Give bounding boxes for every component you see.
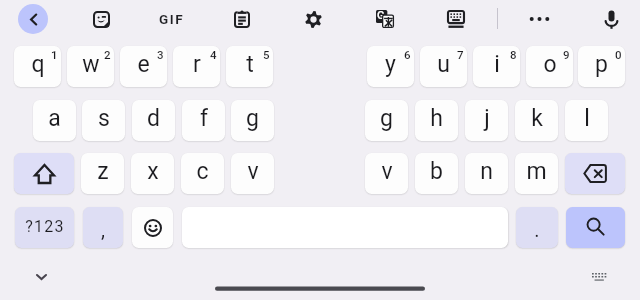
button[interactable]: n	[465, 153, 508, 194]
button[interactable]: Translate	[367, 1, 403, 37]
staticText: 6	[404, 48, 411, 61]
button[interactable]: v	[365, 153, 408, 194]
staticText: y	[385, 51, 396, 78]
button[interactable]: l	[565, 100, 608, 141]
staticText: j	[484, 105, 490, 132]
staticText: u	[437, 51, 450, 78]
staticText: .	[534, 218, 540, 241]
button[interactable]: g	[231, 100, 274, 141]
staticText: ?123	[25, 217, 65, 236]
staticText: c	[196, 158, 209, 185]
button[interactable]: a	[33, 100, 76, 141]
staticText: w	[82, 51, 100, 78]
button[interactable]: Shift	[14, 153, 74, 194]
staticText: 1	[51, 48, 58, 61]
button[interactable]: Stickers	[83, 1, 119, 37]
staticText: v	[247, 158, 259, 185]
button[interactable]: s	[82, 100, 125, 141]
button[interactable]: x	[131, 153, 174, 194]
button[interactable]: y	[367, 46, 414, 87]
button[interactable]: ?123	[15, 207, 74, 248]
button[interactable]: Backspace	[565, 153, 625, 194]
staticText: r	[193, 51, 201, 78]
staticText: d	[147, 105, 160, 132]
staticText: 3	[157, 48, 164, 61]
button[interactable]: Search	[566, 207, 625, 248]
button[interactable]: r	[173, 46, 220, 87]
button[interactable]: ,	[83, 207, 123, 248]
staticText: v	[381, 158, 393, 185]
button[interactable]: m	[515, 153, 558, 194]
staticText: g	[380, 105, 393, 132]
staticText: 8	[510, 48, 517, 61]
button[interactable]: t	[226, 46, 273, 87]
staticText: G	[377, 9, 385, 22]
button[interactable]: GIF	[154, 1, 190, 37]
staticText: t	[246, 51, 254, 78]
staticText: a	[48, 105, 61, 132]
button[interactable]: .	[516, 207, 558, 248]
staticText: k	[531, 105, 543, 132]
button[interactable]: b	[415, 153, 458, 194]
button[interactable]: k	[515, 100, 558, 141]
button[interactable]: u	[420, 46, 467, 87]
staticText: i	[494, 51, 500, 78]
button[interactable]: Emoji	[132, 207, 173, 248]
staticText: 9	[563, 48, 570, 61]
staticText: ,	[101, 218, 105, 241]
staticText: 7	[457, 48, 464, 61]
staticText: s	[98, 105, 110, 132]
button[interactable]: q	[14, 46, 61, 87]
staticText: q	[31, 51, 45, 78]
button[interactable]: Keyboard settings	[581, 259, 617, 295]
button[interactable]: More options	[521, 1, 557, 37]
button[interactable]: w	[67, 46, 114, 87]
button[interactable]: Back	[18, 4, 48, 34]
button[interactable]: v	[231, 153, 274, 194]
button[interactable]: Clipboard	[224, 1, 260, 37]
button[interactable]: d	[132, 100, 175, 141]
staticText: n	[480, 158, 493, 185]
staticText: m	[526, 158, 547, 185]
button[interactable]: h	[415, 100, 458, 141]
staticText: 2	[104, 48, 111, 61]
button[interactable]: f	[182, 100, 225, 141]
staticText: 0	[615, 48, 622, 61]
button[interactable]: Voice input	[593, 1, 629, 37]
button[interactable]: j	[465, 100, 508, 141]
staticText: g	[246, 105, 259, 132]
button[interactable]: o	[526, 46, 573, 87]
button[interactable]: g	[365, 100, 408, 141]
staticText: p	[595, 51, 608, 78]
staticText: e	[137, 51, 150, 78]
staticText: f	[200, 105, 208, 132]
staticText: x	[147, 158, 159, 185]
button[interactable]: c	[181, 153, 224, 194]
staticText: 5	[263, 48, 270, 61]
staticText: 4	[210, 48, 217, 61]
button[interactable]: i	[473, 46, 520, 87]
button[interactable]: e	[120, 46, 167, 87]
staticText: b	[430, 158, 443, 185]
staticText: GIF	[159, 11, 185, 27]
button[interactable]: Hide keyboard	[23, 258, 59, 294]
staticText: z	[97, 158, 109, 185]
button[interactable]: Switch keyboard	[438, 1, 474, 37]
staticText: h	[430, 105, 443, 132]
button[interactable]: z	[81, 153, 124, 194]
staticText: l	[584, 105, 590, 132]
button[interactable]: p	[578, 46, 625, 87]
button[interactable]: Settings	[295, 1, 331, 37]
staticText: o	[543, 51, 557, 78]
